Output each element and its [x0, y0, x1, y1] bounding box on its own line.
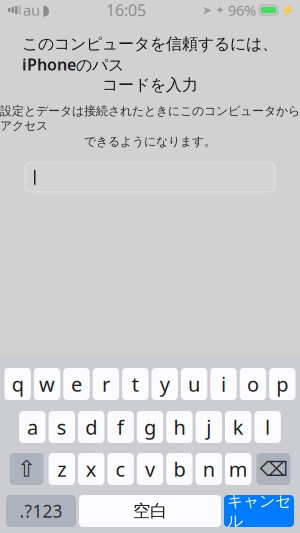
- staticText: y: [160, 371, 170, 397]
- button[interactable]: g: [137, 411, 163, 443]
- button[interactable]: t: [122, 368, 148, 400]
- button[interactable]: Delete: [256, 453, 290, 485]
- button[interactable]: z: [49, 453, 75, 485]
- button[interactable]: o: [240, 368, 266, 400]
- button[interactable]: v: [137, 453, 163, 485]
- staticText: t: [132, 371, 139, 397]
- staticText: b: [173, 456, 185, 482]
- staticText: a: [27, 414, 38, 440]
- button[interactable]: b: [166, 453, 193, 485]
- button[interactable]: j: [196, 411, 222, 443]
- button[interactable]: p: [269, 368, 295, 400]
- staticText: au: [23, 0, 40, 20]
- staticText: c: [116, 456, 126, 482]
- staticText: ◗: [42, 2, 50, 18]
- button[interactable]: f: [107, 411, 134, 443]
- button[interactable]: l: [254, 411, 281, 443]
- button[interactable]: Passcode field: [25, 163, 275, 192]
- button[interactable]: y: [151, 368, 178, 400]
- staticText: 16:05: [106, 0, 146, 21]
- button[interactable]: u: [181, 368, 207, 400]
- button[interactable]: n: [196, 453, 222, 485]
- staticText: ⌫: [259, 458, 287, 480]
- button[interactable]: i: [210, 368, 237, 400]
- staticText: m: [229, 456, 248, 482]
- staticText: ⚡: [281, 4, 294, 16]
- staticText: s: [57, 414, 67, 440]
- staticText: h: [173, 414, 185, 440]
- staticText: g: [144, 414, 156, 440]
- staticText: i: [221, 371, 226, 397]
- button[interactable]: s: [49, 411, 75, 443]
- staticText: コードを入力: [102, 75, 198, 95]
- staticText: n: [203, 456, 215, 482]
- button[interactable]: r: [93, 368, 119, 400]
- button[interactable]: q: [4, 368, 31, 400]
- staticText: キャンセル: [227, 491, 291, 531]
- staticText: u: [188, 371, 200, 397]
- staticText: ⇧: [17, 456, 36, 482]
- button[interactable]: h: [166, 411, 193, 443]
- staticText: k: [233, 414, 244, 440]
- button[interactable]: k: [225, 411, 251, 443]
- staticText: j: [206, 414, 211, 440]
- button[interactable]: m: [225, 453, 251, 485]
- staticText: 96%: [228, 0, 256, 20]
- button[interactable]: x: [78, 453, 104, 485]
- staticText: o: [247, 371, 259, 397]
- staticText: できるようになります。: [84, 134, 216, 149]
- staticText: f: [117, 414, 124, 440]
- staticText: v: [145, 456, 155, 482]
- staticText: z: [57, 456, 66, 482]
- staticText: ✦: [215, 3, 225, 17]
- button[interactable]: a: [19, 411, 46, 443]
- button[interactable]: キャンセル: [224, 495, 294, 527]
- staticText: l: [265, 414, 270, 440]
- button[interactable]: w: [34, 368, 60, 400]
- button[interactable]: 空白: [79, 495, 221, 527]
- staticText: ➤: [202, 3, 212, 17]
- staticText: 設定とデータは接続されたときにこのコンピュータからアクセス: [0, 104, 300, 133]
- staticText: x: [86, 456, 97, 482]
- button[interactable]: .?123: [6, 495, 76, 527]
- staticText: p: [276, 371, 288, 397]
- staticText: d: [85, 414, 97, 440]
- button[interactable]: Shift: [10, 453, 44, 485]
- staticText: .?123: [19, 499, 62, 522]
- button[interactable]: c: [107, 453, 134, 485]
- staticText: w: [39, 371, 55, 397]
- staticText: q: [12, 371, 24, 397]
- button[interactable]: e: [63, 368, 90, 400]
- staticText: このコンピュータを信頼するには、iPhoneのパス: [22, 34, 278, 75]
- button[interactable]: d: [78, 411, 104, 443]
- staticText: 空白: [133, 500, 167, 522]
- staticText: e: [71, 371, 82, 397]
- staticText: r: [102, 371, 110, 397]
